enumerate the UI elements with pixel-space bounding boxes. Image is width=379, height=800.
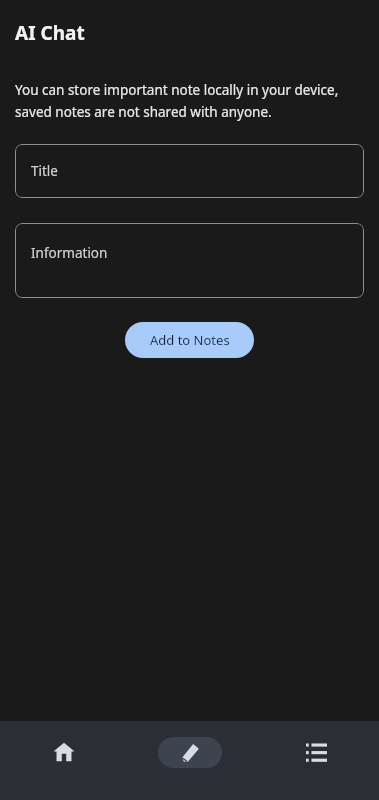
- button[interactable]: Notes list: [253, 721, 379, 783]
- staticText: You can store important note locally in …: [15, 81, 349, 121]
- button[interactable]: Create note: [127, 721, 253, 783]
- staticText: Add to Notes: [150, 331, 230, 349]
- staticText: AI Chat: [15, 20, 85, 46]
- staticText: Information: [31, 244, 108, 262]
- staticText: Title: [31, 162, 58, 180]
- button[interactable]: Add to Notes: [125, 322, 254, 358]
- button[interactable]: Title: [15, 144, 364, 198]
- button[interactable]: Home: [0, 721, 127, 783]
- button[interactable]: Information: [15, 223, 364, 298]
